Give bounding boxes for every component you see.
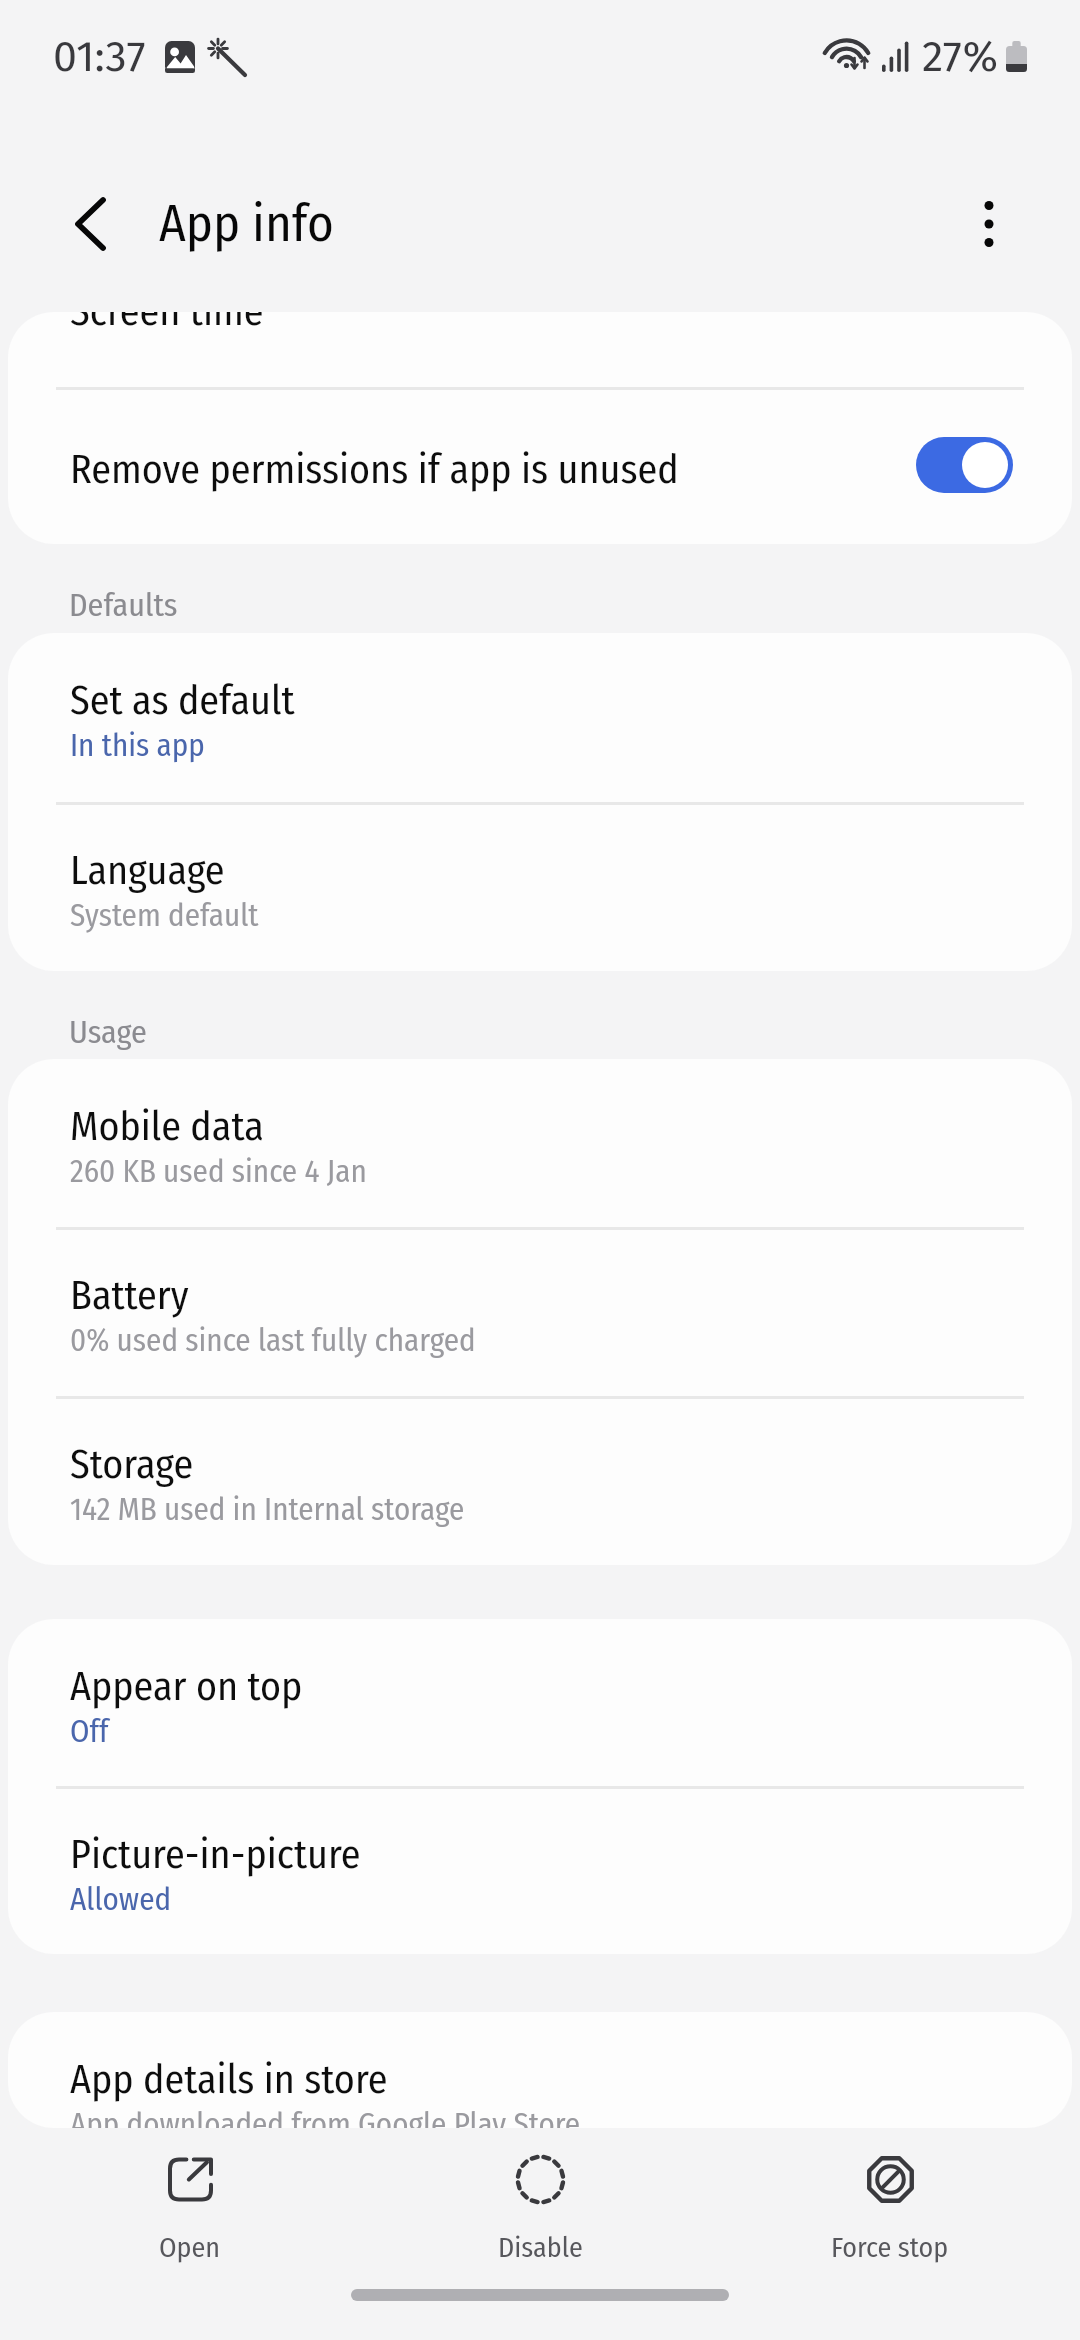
button[interactable]: Open [30, 2136, 350, 2286]
button[interactable]: Remove permissions if app is unused [916, 437, 1013, 493]
button[interactable]: Language [8, 803, 1072, 971]
staticText: Picture-in-picture [70, 1831, 361, 1879]
staticText: Set as default [70, 677, 295, 725]
staticText: 0% used since last fully charged [70, 1322, 476, 1359]
button[interactable]: Picture-in-picture [8, 1787, 1072, 1954]
staticText: Defaults [69, 586, 178, 624]
staticText: Language [70, 847, 225, 895]
staticText: App details in store [70, 2056, 388, 2104]
staticText: Off [70, 1713, 109, 1750]
staticText: Battery [70, 1272, 189, 1320]
staticText: Open [159, 2231, 221, 2265]
staticText: App info [159, 193, 334, 254]
staticText: 260 KB used since 4 Jan [70, 1153, 367, 1190]
staticText: App downloaded from Google Play Store [70, 2106, 581, 2128]
button[interactable]: More options [944, 179, 1034, 269]
staticText: Force stop [831, 2231, 949, 2265]
button[interactable]: Force stop [730, 2136, 1050, 2286]
button[interactable]: App details in store [8, 2012, 1072, 2128]
button[interactable]: Mobile data [8, 1059, 1072, 1228]
button[interactable]: Storage [8, 1397, 1072, 1565]
button[interactable]: Remove permissions if app is unused [8, 390, 1072, 544]
staticText: In this app [70, 727, 205, 764]
staticText: Remove permissions if app is unused [70, 446, 679, 494]
staticText: 27% [922, 31, 998, 83]
staticText: System default [70, 897, 259, 934]
button[interactable]: Disable [380, 2136, 700, 2286]
staticText: Disable [498, 2231, 583, 2265]
staticText: Allowed [70, 1881, 172, 1918]
staticText: Appear on top [70, 1663, 303, 1711]
staticText: 142 MB used in Internal storage [70, 1491, 465, 1528]
staticText: Storage [70, 1441, 194, 1489]
button[interactable]: Battery [8, 1228, 1072, 1397]
staticText: Mobile data [70, 1103, 264, 1151]
staticText: 01:37 [53, 31, 146, 83]
button[interactable]: Appear on top [8, 1619, 1072, 1787]
button[interactable]: Set as default [8, 633, 1072, 803]
staticText: Usage [69, 1013, 147, 1051]
button[interactable]: Screen time [8, 312, 1072, 388]
staticText: Screen time [70, 312, 264, 336]
button[interactable]: Navigate up [45, 179, 135, 269]
